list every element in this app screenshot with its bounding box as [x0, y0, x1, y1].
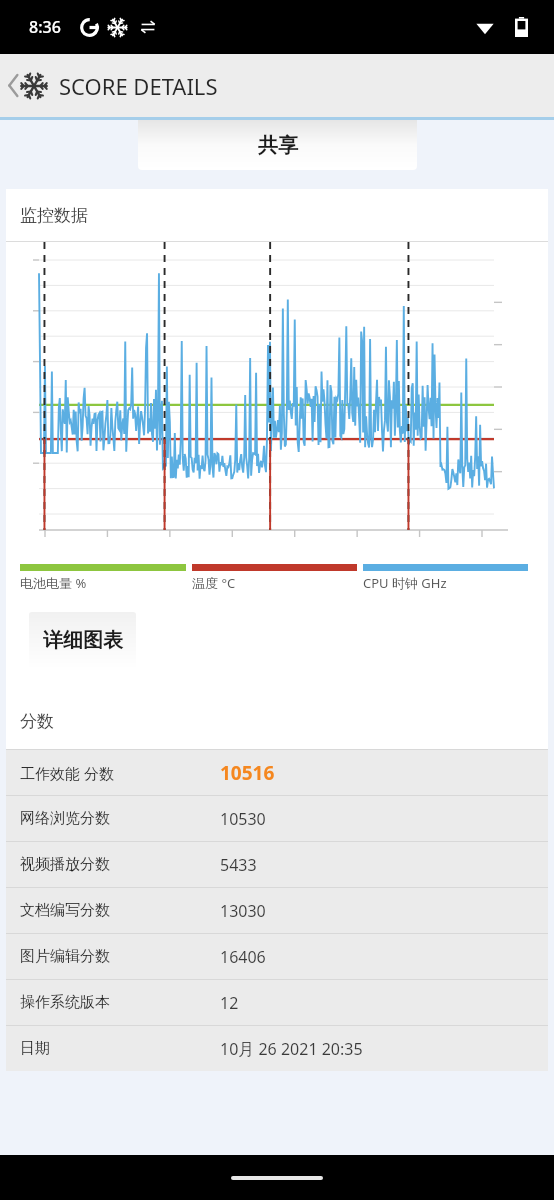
button[interactable]: 文档编写分数 — [6, 888, 548, 933]
staticText: 共享 — [258, 133, 298, 158]
staticText: 13030 — [220, 900, 266, 922]
staticText: 10516 — [220, 760, 275, 786]
staticText: 分数 — [20, 711, 54, 732]
staticText: 工作效能 分数 — [20, 763, 114, 783]
staticText: 16406 — [220, 946, 266, 968]
staticText: 视频播放分数 — [20, 855, 110, 874]
staticText: 日期 — [20, 1039, 50, 1058]
button[interactable]: 操作系统版本 — [6, 980, 548, 1025]
staticText: CPU 时钟 GHz — [363, 574, 447, 592]
button[interactable]: 视频播放分数 — [6, 842, 548, 887]
staticText: 12 — [220, 992, 239, 1014]
staticText: 8:36 — [29, 16, 61, 38]
button[interactable]: Back — [0, 54, 51, 117]
button[interactable]: 网络浏览分数 — [6, 796, 548, 841]
staticText: 监控数据 — [20, 205, 88, 226]
button[interactable]: 详细图表 — [29, 612, 136, 669]
staticText: 文档编写分数 — [20, 901, 110, 920]
staticText: SCORE DETAILS — [59, 71, 218, 101]
staticText: 温度 °C — [192, 574, 236, 592]
staticText: 5433 — [220, 854, 257, 876]
staticText: 操作系统版本 — [20, 993, 110, 1012]
button[interactable]: 工作效能 分数 — [6, 750, 548, 795]
staticText: 10月 26 2021 20:35 — [220, 1038, 363, 1060]
button[interactable]: 图片编辑分数 — [6, 934, 548, 979]
staticText: 电池电量 % — [20, 574, 87, 592]
staticText: 网络浏览分数 — [20, 809, 110, 828]
staticText: 图片编辑分数 — [20, 947, 110, 966]
staticText: 10530 — [220, 808, 266, 830]
staticText: 详细图表 — [43, 628, 123, 653]
button[interactable]: 日期 — [6, 1026, 548, 1071]
button[interactable]: 共享 — [138, 120, 417, 170]
